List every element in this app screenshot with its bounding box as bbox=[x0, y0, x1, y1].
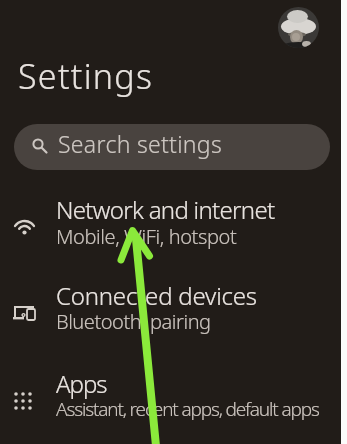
button[interactable]: Apps bbox=[0, 363, 341, 444]
staticText: Apps bbox=[56, 367, 107, 400]
staticText: Search settings bbox=[58, 128, 222, 159]
staticText: Settings bbox=[18, 53, 154, 99]
staticText: Assistant, recent apps, default apps bbox=[56, 396, 319, 422]
button[interactable] bbox=[278, 7, 319, 48]
button[interactable]: Search settings bbox=[14, 124, 330, 170]
button[interactable]: Connected devices bbox=[0, 272, 341, 350]
staticText: Mobile, WiFi, hotspot bbox=[56, 223, 237, 250]
staticText: Bluetooth, pairing bbox=[56, 308, 211, 335]
button[interactable]: Network and internet bbox=[0, 187, 341, 263]
staticText: Connected devices bbox=[56, 279, 257, 312]
staticText: Network and internet bbox=[56, 193, 275, 226]
